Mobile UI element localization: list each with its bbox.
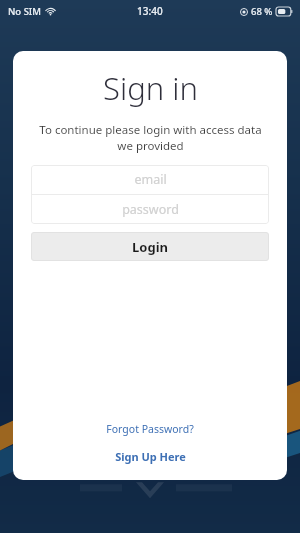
other: Wi-Fi signal [45, 6, 56, 17]
other: Battery 68 percent [276, 7, 293, 16]
staticText: No SIM [8, 5, 41, 18]
staticText: 13:40 [137, 4, 163, 18]
staticText: password [122, 201, 179, 218]
staticText: Login [132, 238, 168, 256]
button[interactable]: Sign Up Here [105, 446, 196, 467]
other: Location services active [240, 8, 248, 16]
button[interactable]: Login [31, 232, 269, 261]
staticText: Sign Up Here [115, 449, 186, 464]
button[interactable]: password [31, 195, 269, 224]
staticText: 68 % [251, 5, 273, 18]
staticText: Sign in [103, 67, 198, 109]
button[interactable]: Forgot Password? [96, 419, 204, 439]
staticText: email [134, 171, 167, 188]
staticText: Forgot Password? [106, 422, 194, 436]
staticText: To continue please login with access dat… [39, 122, 262, 153]
button[interactable]: email [31, 165, 269, 194]
